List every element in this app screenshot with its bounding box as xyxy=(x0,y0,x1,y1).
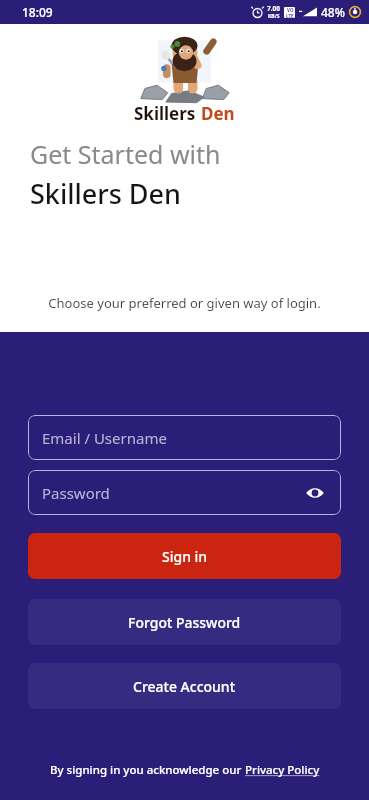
staticText: Create Account xyxy=(133,677,236,696)
staticText: Password xyxy=(42,483,303,503)
staticText: Choose your preferred or given way of lo… xyxy=(0,294,369,312)
staticText: KB/S xyxy=(268,13,280,20)
staticText: 48% xyxy=(321,4,345,20)
button[interactable]: Privacy Policy xyxy=(245,762,320,778)
staticText: By signing in you acknowledge our xyxy=(50,762,245,778)
staticText: Privacy Policy xyxy=(245,762,320,778)
staticText: Den xyxy=(201,102,235,125)
staticText: Skillers xyxy=(134,102,196,125)
button[interactable]: Create Account xyxy=(28,663,341,709)
button[interactable]: Password xyxy=(28,470,341,515)
button[interactable]: Forgot Password xyxy=(28,599,341,645)
button[interactable]: Show password xyxy=(303,481,327,505)
staticText: Forgot Password xyxy=(128,613,241,632)
staticText: Skillers Den xyxy=(30,175,182,212)
button[interactable]: Sign in xyxy=(28,533,341,579)
staticText: 18:09 xyxy=(22,4,53,20)
staticText: 7.00 xyxy=(267,4,280,13)
button[interactable]: Email / Username xyxy=(28,415,341,460)
staticText: Email / Username xyxy=(42,428,327,448)
staticText: Get Started with xyxy=(30,137,221,171)
staticText: VO xyxy=(287,7,294,13)
staticText: Sign in xyxy=(162,547,208,566)
staticText: LTE xyxy=(286,13,294,18)
